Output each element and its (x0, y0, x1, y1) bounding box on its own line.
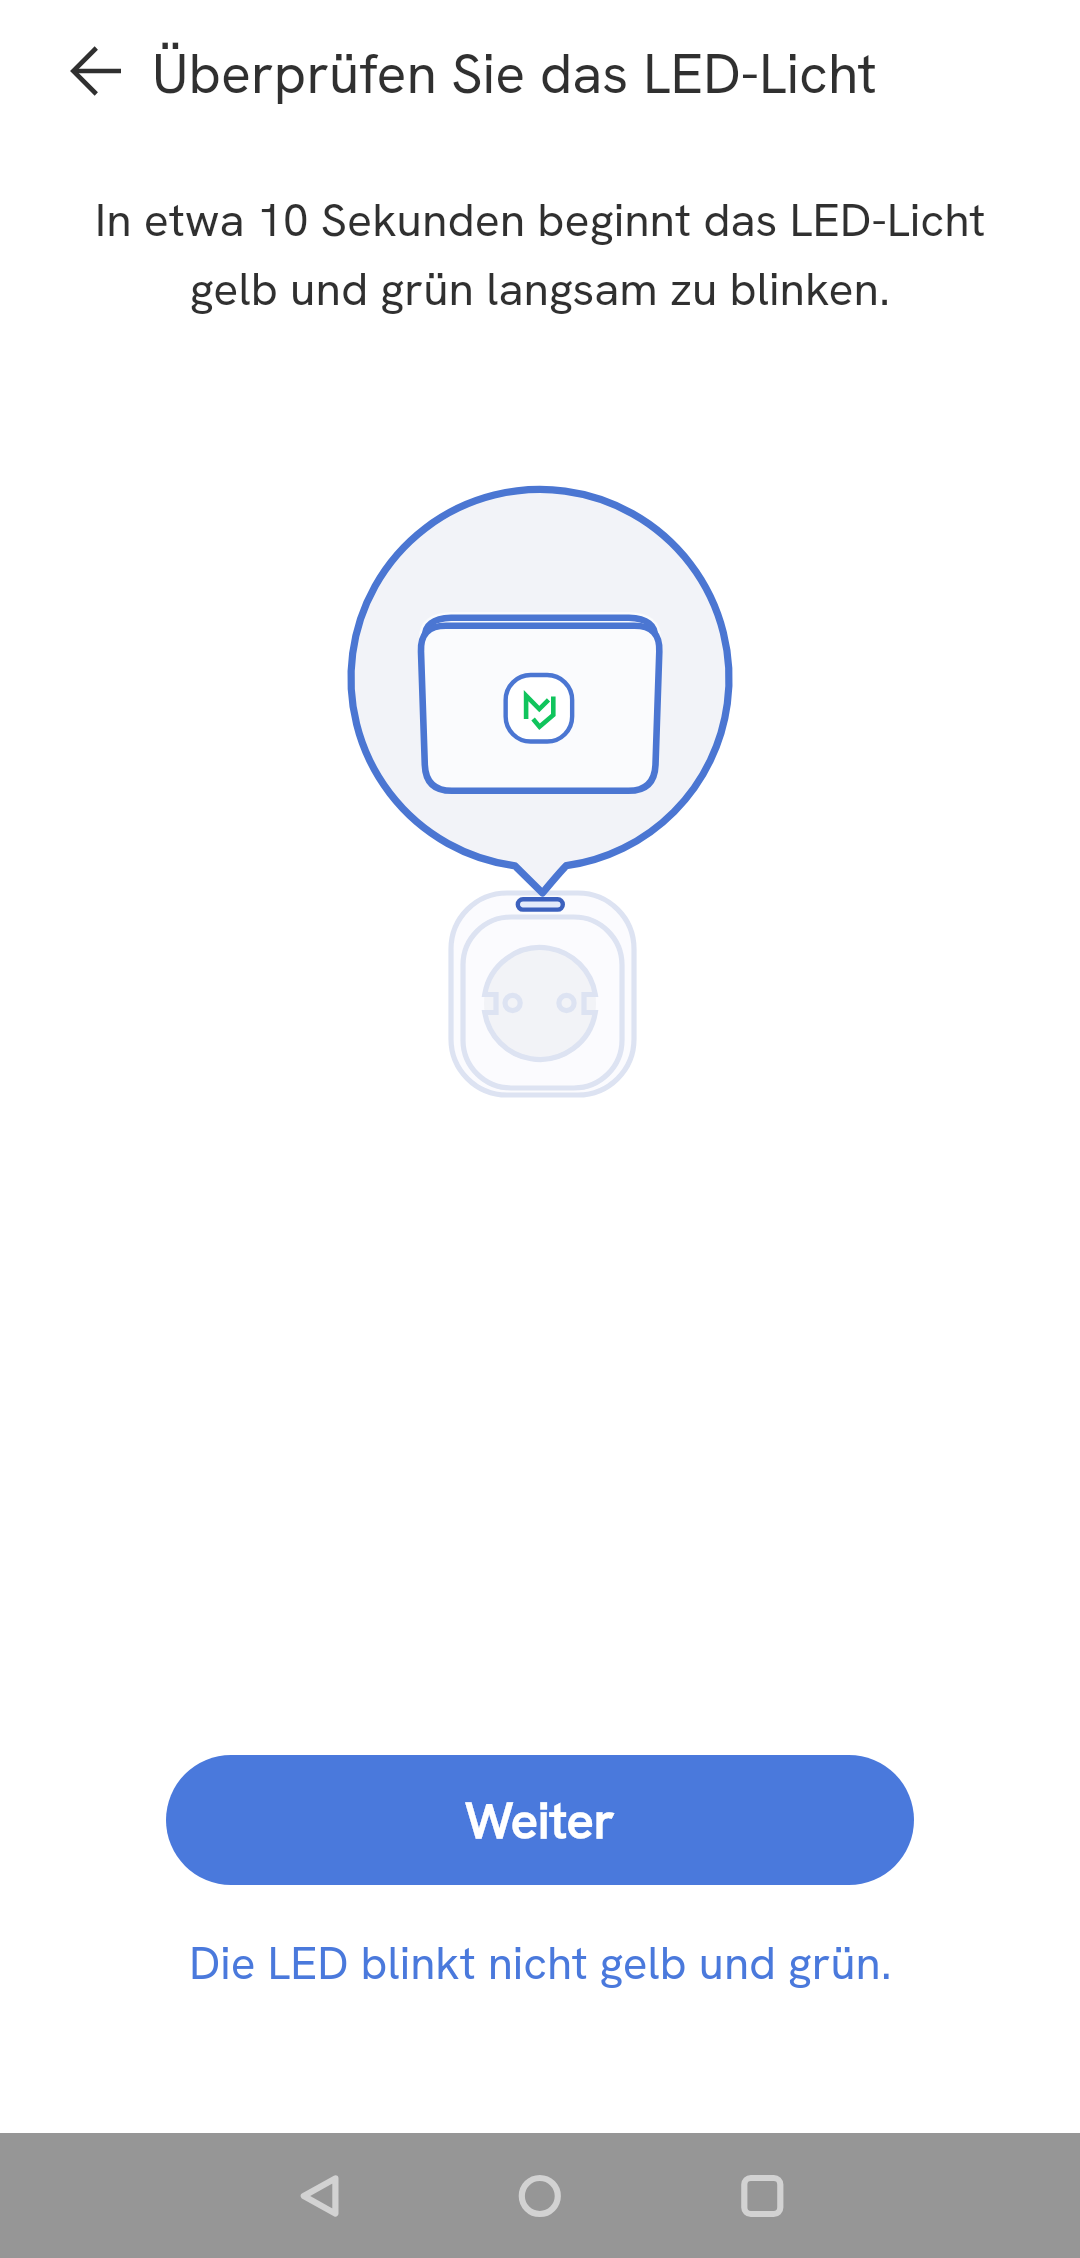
staticText: Die LED blinkt nicht gelb und grün. (189, 1933, 892, 1993)
staticText: Überprüfen Sie das LED-Licht (152, 37, 877, 109)
button[interactable]: Die LED blinkt nicht gelb und grün. (0, 1908, 1080, 2018)
staticText: In etwa 10 Sekunden beginnt das LED-Lich… (40, 189, 1040, 319)
button[interactable]: Zurück (250, 2133, 390, 2258)
button[interactable]: Zurück (49, 24, 143, 118)
button[interactable]: Startbildschirm (470, 2133, 610, 2258)
staticText: Weiter (465, 1787, 615, 1853)
button[interactable]: Übersicht (691, 2133, 831, 2258)
button[interactable]: Weiter (166, 1755, 914, 1885)
